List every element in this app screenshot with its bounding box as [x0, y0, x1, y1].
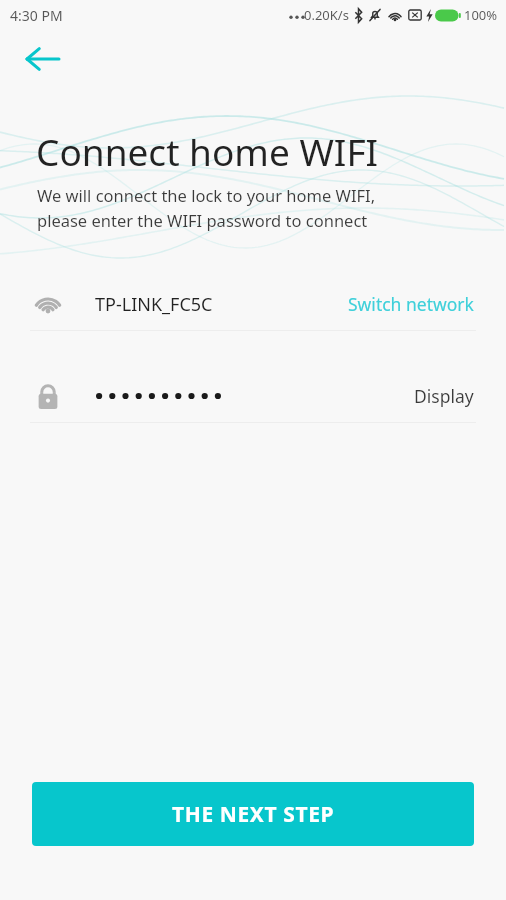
- button[interactable]: Display: [408, 378, 480, 414]
- button[interactable]: Switch network: [342, 286, 480, 322]
- staticText: Connect home WIFI: [36, 126, 379, 176]
- staticText: TP-LINK_FC5C: [95, 292, 213, 317]
- staticText: We will connect the lock to your home WI…: [37, 184, 376, 231]
- staticText: 4:30 PM: [10, 6, 63, 25]
- button[interactable]: TP-LINK_FC5C: [0, 278, 506, 330]
- staticText: Display: [414, 384, 474, 408]
- staticText: Switch network: [348, 292, 474, 316]
- staticText: 100%: [464, 6, 498, 24]
- button[interactable]: Display: [0, 370, 506, 422]
- staticText: 0.20K/s: [304, 6, 349, 24]
- button[interactable]: Back: [14, 34, 70, 84]
- button[interactable]: THE NEXT STEP: [32, 782, 474, 846]
- staticText: THE NEXT STEP: [172, 800, 335, 829]
